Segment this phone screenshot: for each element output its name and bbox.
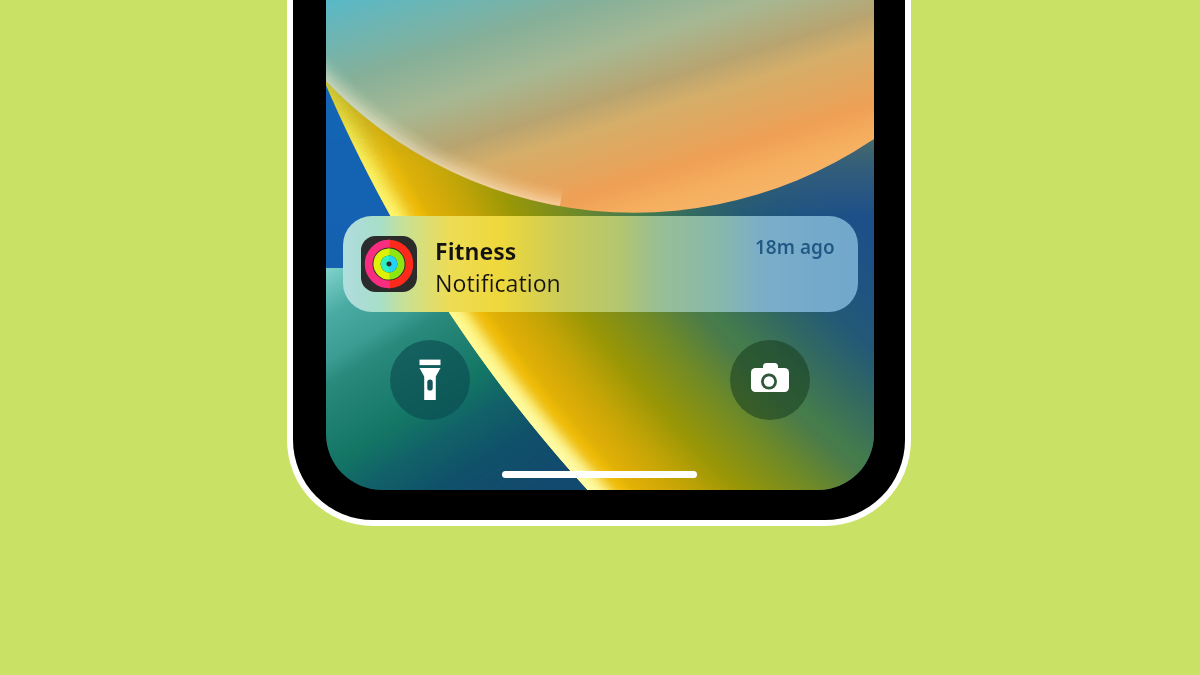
staticText: Notification: [435, 267, 561, 298]
button[interactable]: Fitness: [343, 216, 858, 312]
button[interactable]: Flashlight: [390, 340, 470, 420]
staticText: 18m ago: [755, 234, 835, 260]
staticText: Fitness: [435, 235, 517, 266]
button[interactable]: Camera: [730, 340, 810, 420]
